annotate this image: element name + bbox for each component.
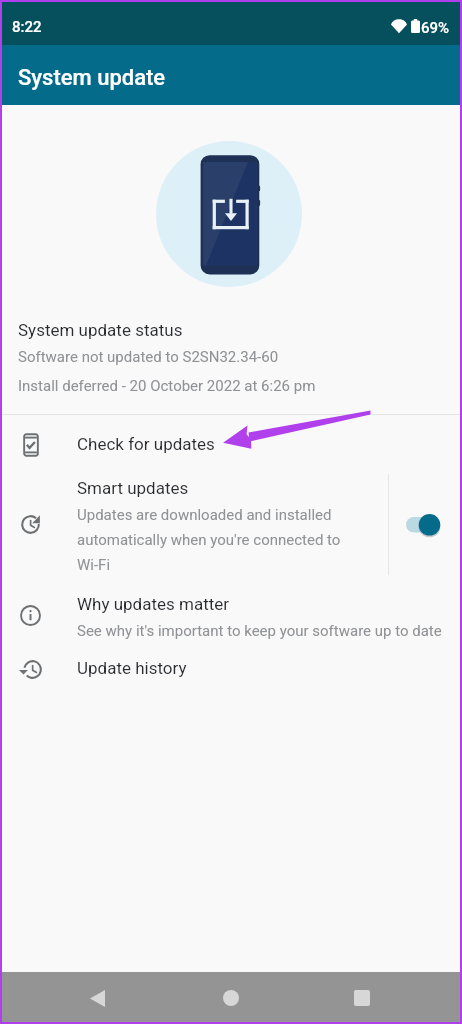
- staticText: 8:22: [12, 18, 42, 36]
- staticText: System update status: [18, 320, 183, 340]
- staticText: System update: [18, 65, 166, 91]
- staticText: See why it's important to keep your soft…: [77, 622, 442, 640]
- staticText: 69%: [421, 19, 450, 37]
- button[interactable]: Recents: [332, 972, 392, 1024]
- button[interactable]: Why updates matter: [0, 583, 462, 645]
- staticText: Check for updates: [77, 434, 215, 454]
- staticText: Why updates matter: [77, 594, 230, 614]
- button[interactable]: Back: [67, 972, 127, 1024]
- button[interactable]: Smart updates: [0, 473, 462, 583]
- staticText: Install deferred - 20 October 2022 at 6:…: [18, 377, 316, 395]
- staticText: Smart updates: [77, 478, 189, 498]
- button[interactable]: Smart updates toggle: [395, 473, 462, 583]
- staticText: Updates are downloaded and installed aut…: [77, 506, 353, 573]
- staticText: Software not updated to S2SN32.34-60: [18, 348, 279, 366]
- button[interactable]: Check for updates: [0, 415, 462, 473]
- staticText: Update history: [77, 658, 187, 678]
- button[interactable]: Home: [201, 972, 261, 1024]
- button[interactable]: Update history: [0, 645, 462, 700]
